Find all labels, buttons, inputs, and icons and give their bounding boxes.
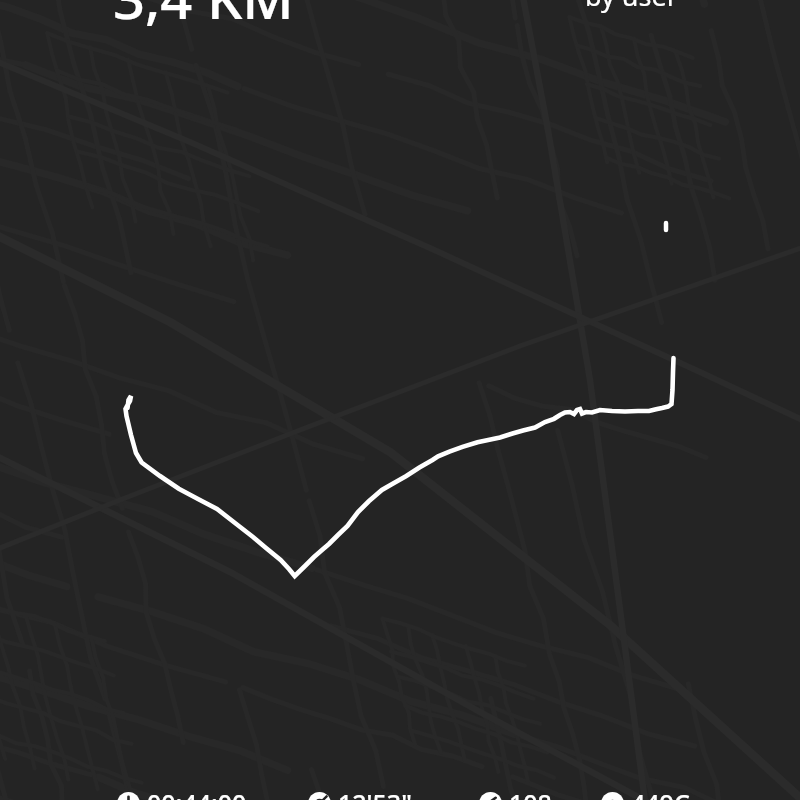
staticText: 00:44:00 — [147, 786, 247, 800]
button[interactable]: 108 — [479, 786, 552, 800]
button[interactable]: 449C — [601, 786, 690, 800]
staticText: by user — [585, 0, 678, 14]
button[interactable]: 3,4 KM — [113, 0, 294, 35]
staticText: 449C — [631, 786, 690, 800]
button[interactable]: 00:44:00 — [117, 786, 247, 800]
staticText: 12'53" — [338, 786, 412, 800]
button[interactable]: 12'53" — [308, 786, 412, 800]
other: 108 — [479, 792, 502, 800]
other: 00:44:00 — [117, 792, 140, 800]
button[interactable]: by user — [585, 0, 678, 14]
other: 449C — [601, 792, 624, 800]
other: 12'53" — [308, 792, 331, 800]
staticText: 108 — [509, 786, 552, 800]
staticText: 3,4 KM — [113, 0, 294, 35]
